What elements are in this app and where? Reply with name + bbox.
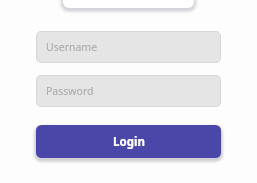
button[interactable]: Password xyxy=(36,75,221,107)
staticText: Login xyxy=(113,134,145,150)
staticText: Username xyxy=(46,40,98,54)
button[interactable]: Username xyxy=(36,31,221,63)
staticText: Password xyxy=(46,84,94,98)
button[interactable]: Login xyxy=(36,125,221,158)
